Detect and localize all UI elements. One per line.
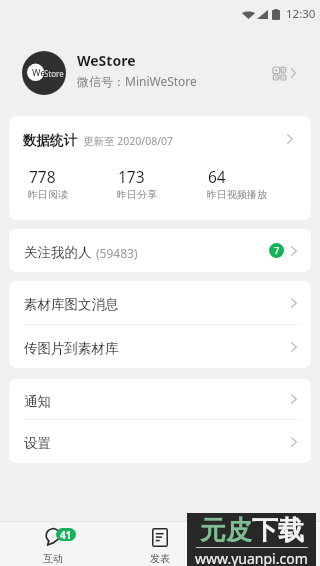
button[interactable]: Store — [0, 51, 320, 95]
staticText: WeStore — [77, 51, 136, 70]
button[interactable]: 数据统计 — [9, 116, 311, 160]
staticText: 昨日阅读 — [28, 188, 68, 201]
staticText: (59483) — [96, 245, 138, 261]
staticText: 下载 — [252, 514, 304, 547]
button[interactable]: 通知 — [9, 379, 311, 419]
staticText: 关注我的人 — [24, 244, 92, 261]
staticText: 元皮 — [200, 514, 252, 547]
staticText: 互动 — [43, 552, 63, 565]
staticText: 设置 — [24, 435, 51, 452]
staticText: 64 — [208, 166, 226, 187]
button[interactable]: 传图片到素材库 — [9, 325, 311, 368]
button[interactable]: 关注我的人 — [9, 229, 311, 272]
staticText: 微信号：MiniWeStore — [77, 73, 197, 89]
button[interactable]: 设置 — [9, 420, 311, 463]
staticText: 数据统计 — [23, 132, 77, 149]
staticText: 素材库图文消息 — [24, 296, 119, 313]
staticText: We — [32, 66, 46, 78]
staticText: 更新至 2020/08/07 — [83, 134, 174, 148]
button[interactable]: 素材库图文消息 — [9, 281, 311, 324]
staticText: 通知 — [24, 393, 51, 410]
staticText: 发表 — [150, 552, 170, 565]
staticText: 昨日视频播放 — [207, 188, 267, 201]
button[interactable]: QR code — [266, 60, 286, 86]
staticText: 7 — [274, 244, 280, 257]
staticText: www.yuanpi.com — [195, 549, 308, 566]
staticText: 昨日分享 — [117, 188, 157, 201]
staticText: Store — [44, 68, 64, 79]
button[interactable]: 发表 — [106, 522, 213, 566]
staticText: 41 — [60, 528, 72, 541]
button[interactable]: 41 — [0, 522, 106, 566]
staticText: 778 — [29, 166, 56, 187]
staticText: 传图片到素材库 — [24, 340, 119, 357]
staticText: 12:30 — [286, 6, 316, 22]
staticText: 173 — [118, 166, 145, 187]
